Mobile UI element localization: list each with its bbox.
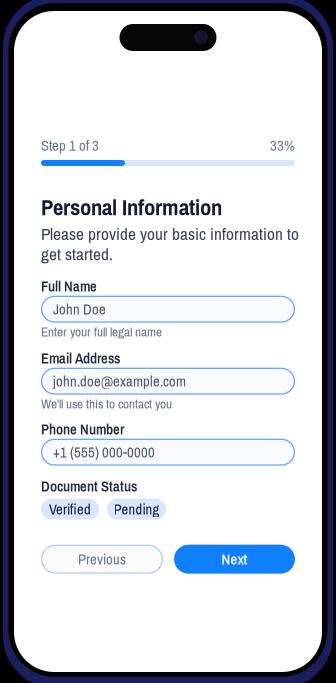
staticText: Enter your full legal name [41,323,162,341]
staticText: Verified [49,499,91,519]
staticText: Please provide your basic information to… [41,222,299,266]
button[interactable]: John Doe [41,296,295,323]
staticText: Previous [78,549,126,569]
staticText: john.doe@example.com [53,371,186,391]
staticText: John Doe [53,299,106,319]
button[interactable]: john.doe@example.com [41,368,295,395]
staticText: Personal Information [41,192,222,222]
staticText: Pending [113,499,159,519]
button[interactable]: +1 (555) 000-0000 [41,439,295,466]
button[interactable]: Pending [107,499,166,520]
staticText: +1 (555) 000-0000 [53,442,155,462]
staticText: Step 1 of 3 [41,136,99,155]
staticText: We'll use this to contact you [41,395,172,413]
staticText: Phone Number [41,419,124,439]
button[interactable]: Next [174,545,295,574]
staticText: Email Address [41,348,120,368]
staticText: Full Name [41,276,97,296]
button[interactable]: Verified [41,499,99,520]
button[interactable]: Previous [41,545,163,574]
staticText: Document Status [41,476,137,496]
staticText: 33% [270,136,295,155]
staticText: Next [221,549,247,569]
